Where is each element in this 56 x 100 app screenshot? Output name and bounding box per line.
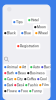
staticText: Bath — [7, 71, 14, 75]
button[interactable]: Search — [4, 57, 9, 62]
staticText: Desk — [17, 83, 25, 87]
button[interactable]: Moon — [33, 24, 47, 30]
staticText: Beauty — [18, 71, 29, 75]
staticText: Coffee — [27, 77, 37, 81]
button[interactable]: Fashion — [24, 82, 42, 88]
staticText: Registration — [20, 44, 39, 48]
button[interactable]: Art — [18, 64, 27, 70]
button[interactable]: Tips — [12, 19, 24, 25]
staticText: Black — [7, 31, 16, 35]
staticText: Art — [22, 65, 26, 69]
button[interactable]: Blue — [20, 30, 32, 36]
staticText: Flowers — [7, 89, 20, 93]
staticText: Fashion — [28, 83, 41, 87]
staticText: Animals — [7, 65, 20, 69]
staticText: Cars — [7, 77, 14, 81]
staticText: Tips — [16, 20, 23, 24]
staticText: Business — [30, 71, 45, 75]
button[interactable]: Desk — [13, 82, 26, 88]
staticText: Hotel — [31, 18, 39, 22]
button[interactable]: Registration — [16, 43, 40, 49]
staticText: City — [17, 77, 23, 81]
staticText: Moon — [37, 25, 46, 29]
button[interactable]: Food — [17, 88, 30, 94]
staticText: Cool — [40, 77, 47, 81]
button[interactable]: Dark — [3, 82, 15, 88]
button[interactable]: City — [13, 76, 24, 82]
staticText: Funny — [32, 89, 42, 93]
button[interactable]: Coffee — [23, 76, 38, 82]
staticText: Food — [21, 89, 29, 93]
button[interactable]: Business — [26, 70, 46, 76]
button[interactable]: Animals — [3, 64, 21, 70]
button[interactable]: Beauty — [14, 70, 30, 76]
button[interactable]: Wheel — [34, 30, 49, 36]
button[interactable]: Auto — [29, 64, 41, 70]
staticText: Blue — [24, 31, 31, 35]
button[interactable]: Cars — [3, 76, 15, 82]
button[interactable]: Film — [38, 82, 50, 88]
button[interactable]: Hotel — [27, 17, 40, 23]
button[interactable]: Cool — [36, 76, 48, 82]
staticText: Dark — [7, 83, 14, 87]
staticText: Film — [42, 83, 49, 87]
staticText: Auto — [33, 65, 40, 69]
button[interactable]: Flowers — [3, 88, 21, 94]
button[interactable]: Black — [3, 30, 17, 36]
button[interactable]: Bath — [3, 70, 15, 76]
button[interactable]: Back — [40, 64, 53, 70]
button[interactable]: Funny — [28, 88, 43, 94]
staticText: Wheel — [38, 31, 48, 35]
staticText: Back — [44, 65, 52, 69]
